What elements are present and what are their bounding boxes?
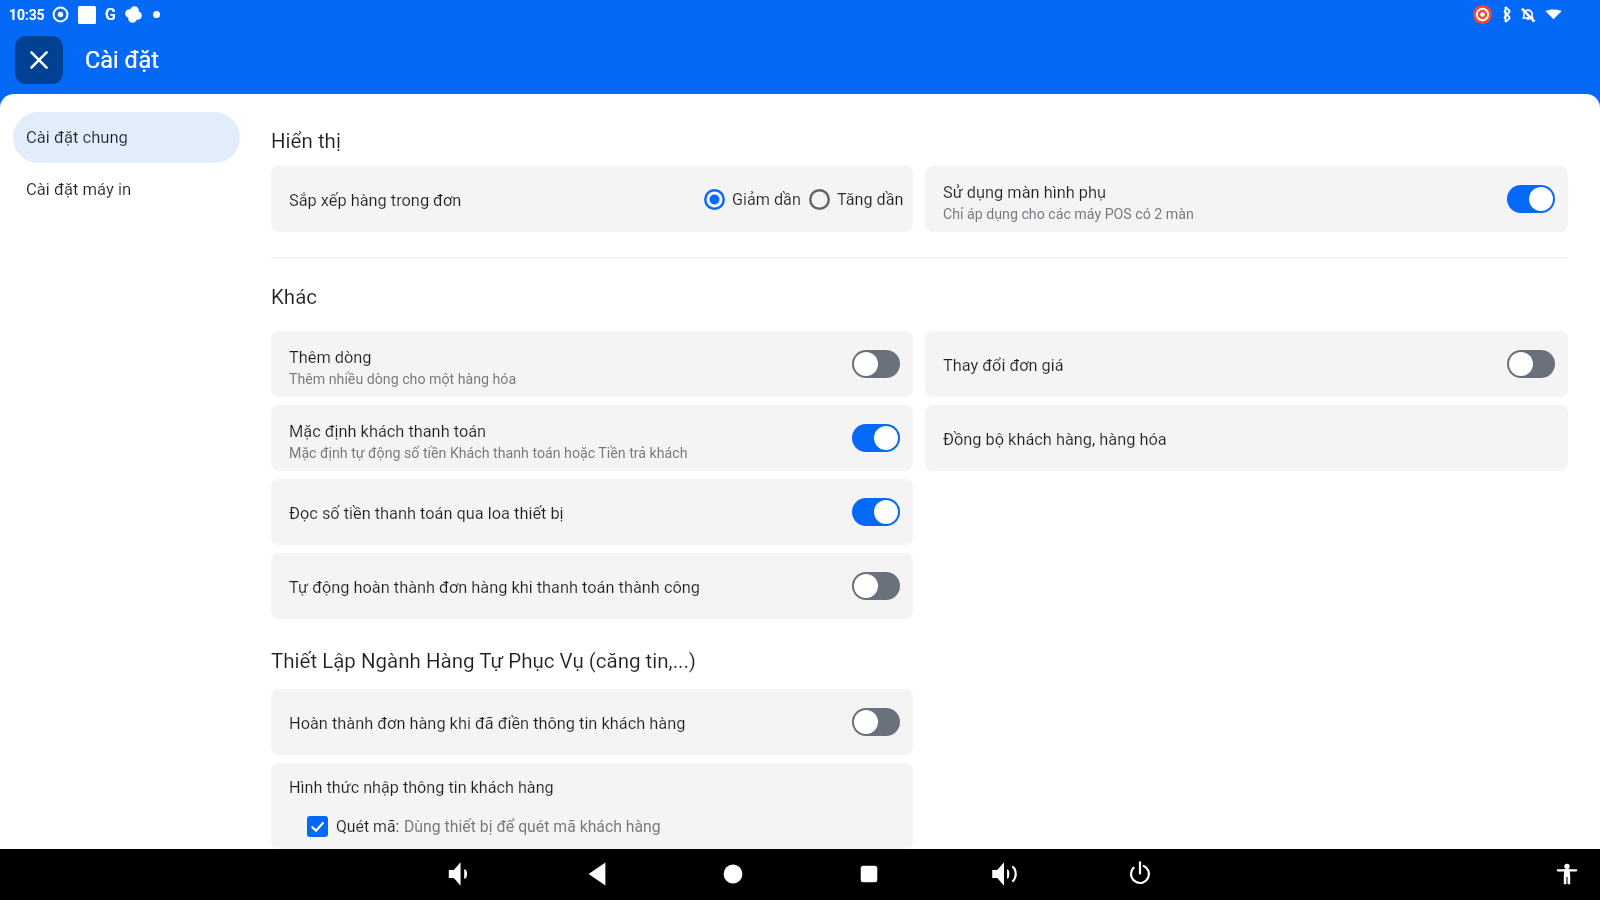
button[interactable]: Cài đặt máy in (13, 164, 240, 215)
staticText: Đọc số tiền thanh toán qua loa thiết bị (289, 504, 564, 523)
button[interactable]: Hình thức nhập thông tin khách hàng (271, 763, 913, 849)
staticText: Mặc định khách thanh toán (289, 422, 487, 441)
button[interactable]: Toggle on (852, 424, 900, 452)
staticText: G (105, 5, 116, 24)
staticText: Dùng thiết bị để quét mã khách hàng (404, 817, 661, 836)
staticText: Khác (271, 285, 318, 309)
button[interactable]: Tăng dần (809, 189, 904, 210)
button[interactable]: Toggle off (852, 350, 900, 378)
button[interactable]: Back (583, 860, 611, 888)
button[interactable]: Home (719, 860, 747, 888)
staticText: 10:35 (9, 7, 45, 23)
button[interactable]: Close (15, 36, 63, 84)
button[interactable]: Toggle off (852, 708, 900, 736)
staticText: Tự động hoàn thành đơn hàng khi thanh to… (289, 578, 700, 597)
staticText: Hiển thị (271, 129, 341, 153)
staticText: Thêm dòng (289, 348, 372, 367)
staticText: Hình thức nhập thông tin khách hàng (289, 778, 554, 797)
staticText: Cài đặt máy in (26, 180, 132, 199)
button[interactable]: Sắp xếp hàng trong đơn (271, 166, 913, 232)
button[interactable]: Giảm dần (704, 189, 801, 210)
button[interactable]: Đồng bộ khách hàng, hàng hóa (925, 405, 1568, 471)
staticText: Hoàn thành đơn hàng khi đã điền thông ti… (289, 714, 686, 733)
staticText: Cài đặt (85, 46, 159, 73)
button[interactable]: Sử dụng màn hình phụ (925, 166, 1568, 232)
button[interactable]: Power (1126, 860, 1154, 888)
button[interactable]: Hoàn thành đơn hàng khi đã điền thông ti… (271, 689, 913, 755)
staticText: Thiết Lập Ngành Hàng Tự Phục Vụ (căng ti… (271, 649, 696, 673)
staticText: Mặc định tự động số tiền Khách thanh toá… (289, 445, 688, 462)
staticText: Cài đặt chung (26, 128, 128, 147)
staticText: Giảm dần (732, 190, 801, 209)
button[interactable]: Recent apps (855, 860, 883, 888)
button[interactable]: Đọc số tiền thanh toán qua loa thiết bị (271, 479, 913, 545)
button[interactable]: Mặc định khách thanh toán (271, 405, 913, 471)
staticText: Chỉ áp dụng cho các máy POS có 2 màn (943, 206, 1194, 223)
staticText: Quét mã: (336, 817, 404, 836)
button[interactable]: Toggle on (1507, 185, 1555, 213)
button[interactable]: Volume up (990, 860, 1018, 888)
button[interactable]: Accessibility (1553, 860, 1581, 888)
staticText: Đồng bộ khách hàng, hàng hóa (943, 430, 1167, 449)
button[interactable]: Thay đổi đơn giá (925, 331, 1568, 397)
button[interactable]: Volume down (446, 860, 474, 888)
button[interactable]: Toggle off (852, 572, 900, 600)
staticText: Sắp xếp hàng trong đơn (289, 191, 462, 210)
staticText: Thay đổi đơn giá (943, 356, 1064, 375)
button[interactable]: Toggle on (852, 498, 900, 526)
button[interactable]: Cài đặt chung (13, 112, 240, 163)
button[interactable]: Thêm dòng (271, 331, 913, 397)
button[interactable]: Tự động hoàn thành đơn hàng khi thanh to… (271, 553, 913, 619)
staticText: Tăng dần (837, 190, 904, 209)
staticText: Sử dụng màn hình phụ (943, 183, 1106, 202)
staticText: Thêm nhiều dòng cho một hàng hóa (289, 371, 517, 388)
button[interactable]: Toggle off (1507, 350, 1555, 378)
